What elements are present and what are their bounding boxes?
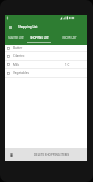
- button[interactable]: Milk: [5, 61, 87, 68]
- button[interactable]: Cilantro: [5, 52, 87, 60]
- button[interactable]: SHOPPING LIST: [27, 33, 51, 45]
- staticText: Shopping List: [18, 25, 38, 29]
- staticText: DELETE SHOPPING ITEMS: [34, 153, 70, 157]
- staticText: 1 C: [65, 63, 70, 67]
- staticText: Milk: [13, 63, 20, 67]
- button[interactable]: MASTER LIST: [5, 33, 27, 45]
- button[interactable]: Vegetables: [5, 69, 87, 77]
- staticText: Vegetables: [13, 71, 29, 75]
- staticText: Cilantro: [13, 54, 25, 58]
- button[interactable]: Open navigation drawer: [5, 22, 16, 33]
- button[interactable]: RECIPE LIST: [51, 33, 87, 45]
- button[interactable]: Butter: [5, 45, 87, 51]
- button[interactable]: Delete checked items: [5, 148, 18, 161]
- staticText: Butter: [13, 46, 23, 50]
- staticText: SHOPPING LIST: [30, 36, 49, 39]
- staticText: MASTER LIST: [8, 36, 24, 39]
- staticText: RECIPE LIST: [62, 36, 77, 39]
